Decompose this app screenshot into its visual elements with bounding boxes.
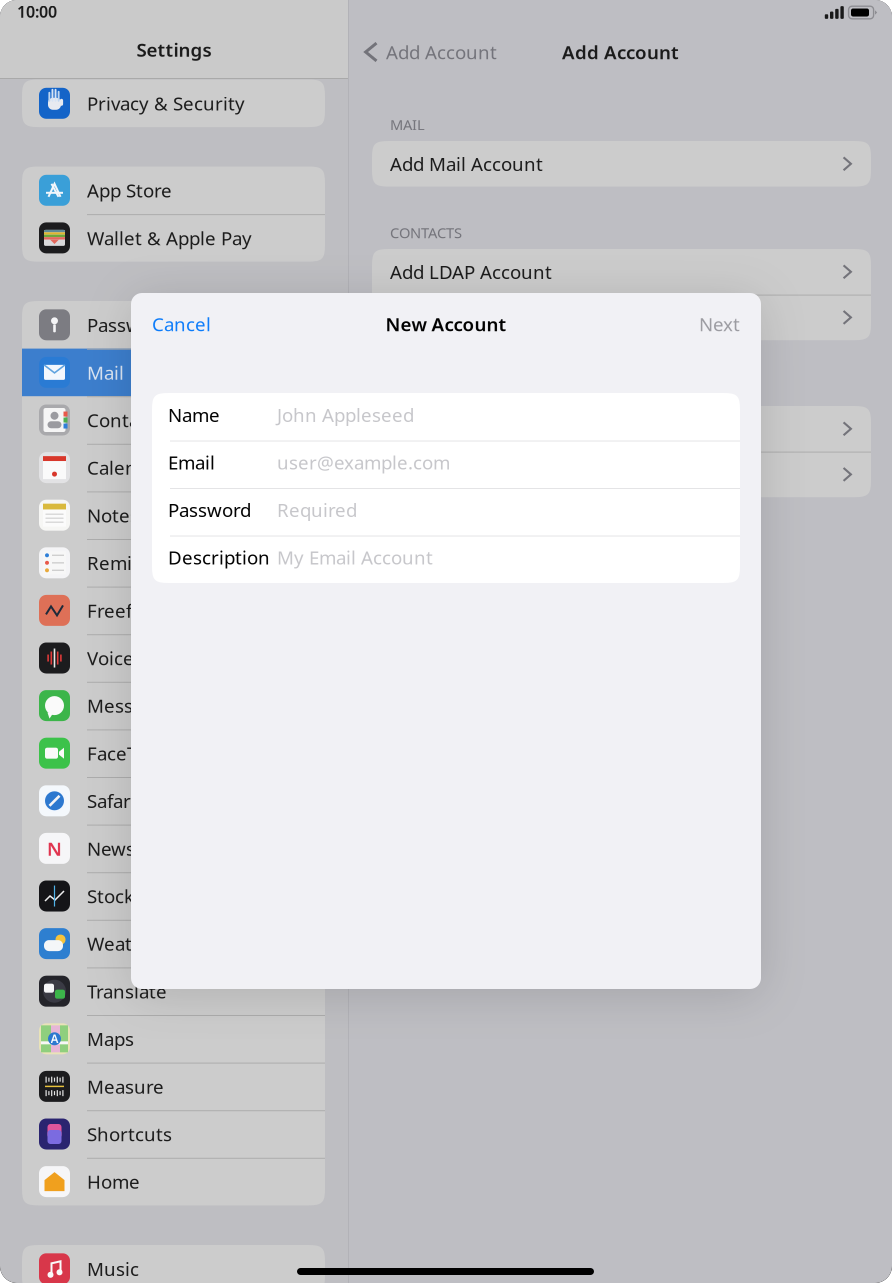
button[interactable]: Privacy & Security	[22, 79, 325, 127]
staticText: Add Mail Account	[390, 151, 543, 176]
button[interactable]: Translate	[22, 967, 325, 1015]
button[interactable]: Add Account	[349, 30, 505, 74]
button[interactable]: FaceTime	[22, 729, 325, 777]
staticText: FaceTime	[87, 741, 170, 766]
button[interactable]: Measure	[22, 1063, 325, 1110]
staticText: user@example.com	[277, 450, 450, 475]
button[interactable]: Add CardDAV Account	[372, 295, 871, 340]
button[interactable]: Cancel	[131, 304, 223, 344]
staticText: Translate	[87, 979, 167, 1004]
staticText: Add CalDAV Account	[390, 416, 568, 441]
staticText: Messages	[87, 693, 174, 718]
staticText: Reminders	[87, 550, 183, 575]
staticText: Calendar	[87, 455, 166, 480]
staticText: Home	[87, 1169, 140, 1194]
staticText: Next	[699, 312, 740, 336]
button[interactable]: Safari	[22, 777, 325, 825]
button[interactable]: Add Subscribed Calendar	[372, 452, 871, 497]
staticText: Add CardDAV Account	[390, 305, 581, 330]
button[interactable]: Weather	[22, 920, 325, 967]
staticText: Passwords	[87, 312, 179, 337]
staticText: Weather	[87, 931, 163, 956]
staticText: Wallet & Apple Pay	[87, 225, 252, 250]
button[interactable]: Name	[152, 393, 740, 440]
button[interactable]: Music	[22, 1245, 325, 1283]
staticText: Measure	[87, 1074, 164, 1099]
staticText: Name	[168, 402, 220, 427]
staticText: Add Account	[386, 40, 497, 64]
staticText: Privacy & Security	[87, 91, 245, 116]
staticText: Voice Memos	[87, 646, 204, 670]
button[interactable]: Shortcuts	[22, 1110, 325, 1158]
staticText: App Store	[87, 178, 172, 203]
staticText: MAIL	[390, 115, 425, 134]
staticText: CALENDARS	[390, 380, 471, 399]
button[interactable]: Password	[152, 488, 740, 535]
button[interactable]: Messages	[22, 682, 325, 729]
staticText: New Account	[385, 312, 506, 336]
button[interactable]: Passwords	[22, 301, 325, 349]
button[interactable]: Freeform	[22, 587, 325, 634]
button[interactable]: Contacts	[22, 396, 325, 444]
staticText: Add Subscribed Calendar	[390, 462, 610, 487]
staticText: Mail	[87, 360, 124, 385]
staticText: Freeform	[87, 598, 168, 623]
button[interactable]: Notes	[22, 491, 325, 539]
staticText: Safari	[87, 788, 136, 813]
staticText: John Appleseed	[277, 402, 414, 427]
staticText: Description	[168, 545, 270, 570]
button[interactable]: A	[22, 1015, 325, 1063]
staticText: Add Account	[562, 40, 679, 64]
staticText: N	[47, 836, 62, 861]
button[interactable]: Next	[687, 304, 761, 344]
button[interactable]: Calendar	[22, 444, 325, 491]
button[interactable]: Description	[152, 535, 740, 583]
staticText: Required	[277, 497, 357, 522]
staticText: Notes	[87, 503, 139, 528]
staticText: Maps	[87, 1026, 134, 1051]
button[interactable]: Reminders	[22, 539, 325, 587]
button[interactable]: Add Mail Account	[372, 141, 871, 187]
staticText: Stocks	[87, 884, 143, 908]
staticText: Cancel	[152, 312, 211, 336]
staticText: CONTACTS	[390, 223, 462, 242]
button[interactable]: Wallet & Apple Pay	[22, 214, 325, 262]
button[interactable]: Voice Memos	[22, 634, 325, 682]
staticText: Music	[87, 1256, 139, 1281]
staticText: Shortcuts	[87, 1122, 172, 1146]
button[interactable]: Add LDAP Account	[372, 249, 871, 295]
staticText: Settings	[136, 37, 211, 62]
staticText: A	[50, 1031, 58, 1047]
staticText: Email	[168, 450, 215, 475]
button[interactable]: Mail	[22, 349, 325, 396]
button[interactable]: Stocks	[22, 872, 325, 920]
button[interactable]: Email	[152, 440, 740, 488]
button[interactable]: Home	[22, 1158, 325, 1205]
staticText: Password	[168, 497, 251, 522]
staticText: News	[87, 836, 135, 861]
staticText: My Email Account	[277, 545, 433, 570]
button[interactable]: Add CalDAV Account	[372, 406, 871, 452]
button[interactable]: App Store	[22, 166, 325, 214]
staticText: Contacts	[87, 408, 164, 432]
staticText: 10:00	[17, 1, 57, 22]
staticText: Add LDAP Account	[390, 259, 552, 284]
button[interactable]: N	[22, 825, 325, 872]
